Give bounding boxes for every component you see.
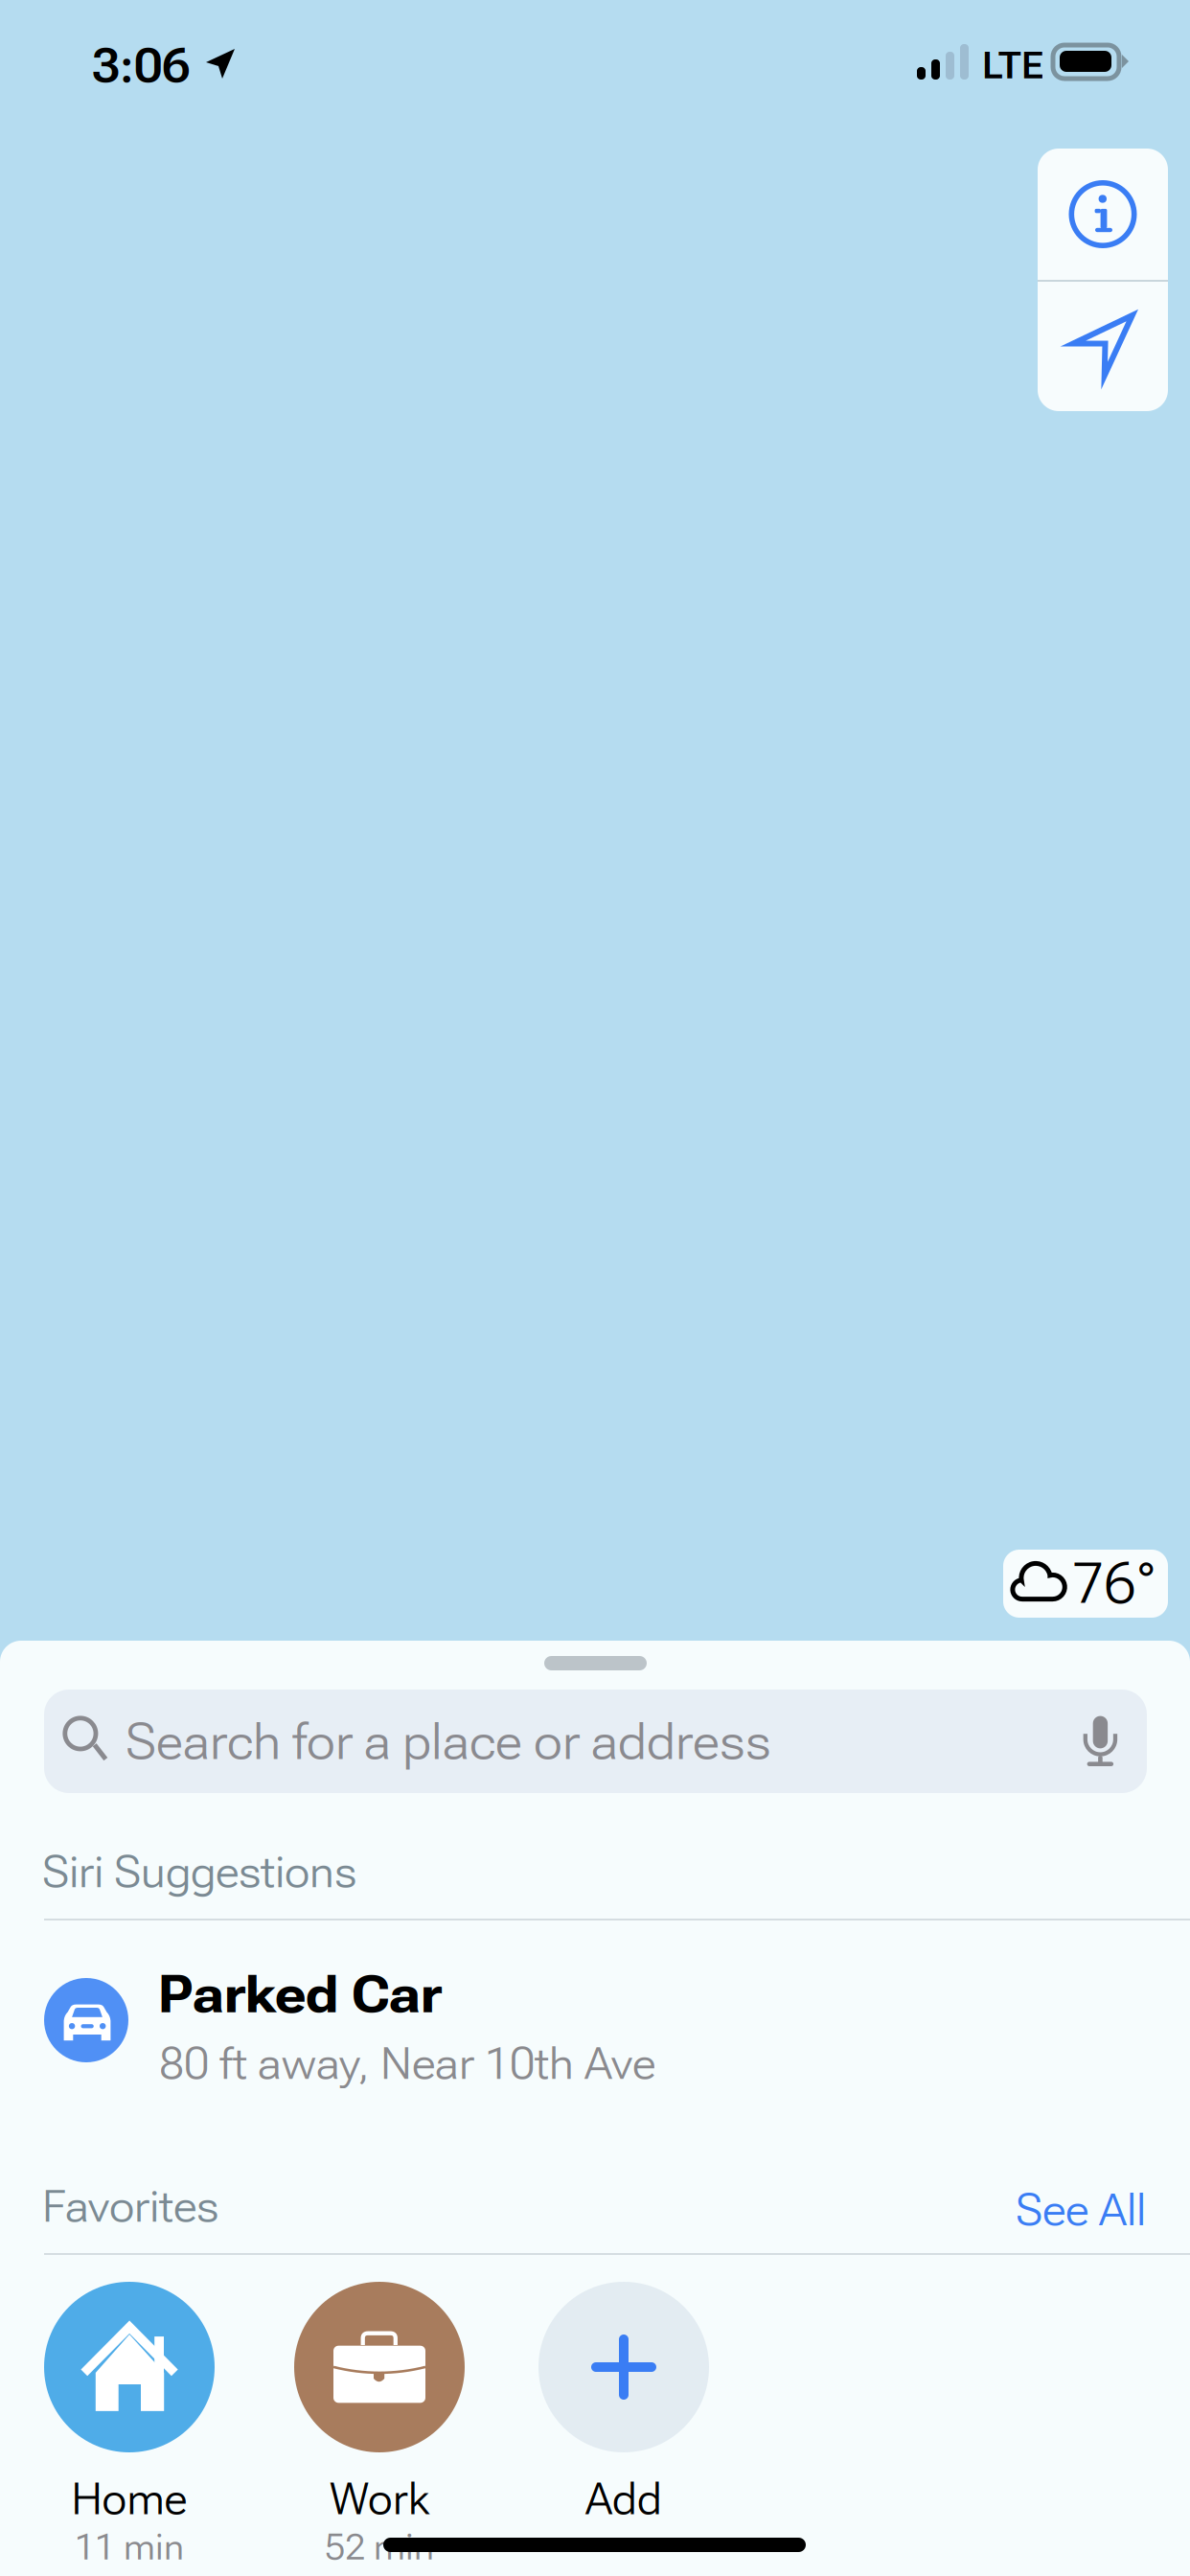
button[interactable]: Current location <box>1038 280 1168 411</box>
button[interactable]: Home <box>14 2282 244 2569</box>
button[interactable]: Add <box>509 2282 739 2569</box>
staticText: 3:06 <box>92 38 190 94</box>
staticText: LTE <box>982 44 1043 87</box>
staticText: Search for a place or address <box>126 1712 771 1771</box>
staticText: 76° <box>1072 1549 1156 1617</box>
button[interactable]: Map settings <box>1038 149 1168 280</box>
button[interactable]: Parked Car <box>44 1963 1190 2106</box>
staticText: 80 ft away, Near 10th Ave <box>159 2037 655 2090</box>
staticText: Parked Car <box>158 1964 442 2025</box>
staticText: See All <box>1016 2184 1146 2236</box>
staticText: Siri Suggestions <box>42 1846 356 1898</box>
button[interactable]: Weather, 76 degrees <box>1003 1550 1168 1618</box>
staticText: 52 min <box>325 2526 434 2568</box>
staticText: Home <box>71 2474 187 2525</box>
staticText: Favorites <box>42 2180 218 2233</box>
staticText: Add <box>585 2474 662 2525</box>
staticText: Work <box>330 2474 429 2525</box>
staticText: 11 min <box>75 2526 184 2568</box>
button[interactable]: Search for a place or address <box>44 1690 1147 1793</box>
button[interactable]: Work <box>264 2282 494 2569</box>
button[interactable]: See All <box>954 2181 1146 2239</box>
